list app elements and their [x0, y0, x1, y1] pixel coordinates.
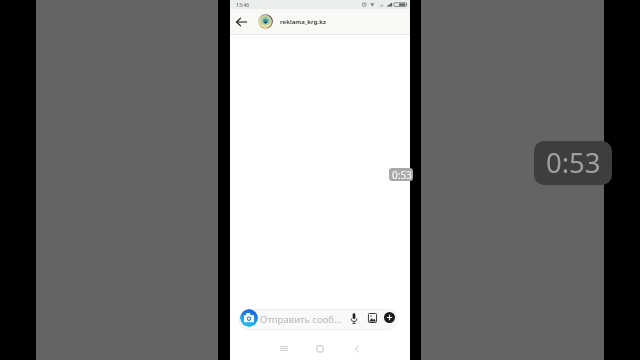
staticText: Отправить сооб...: [260, 313, 342, 326]
button[interactable]: Camera: [240, 309, 258, 327]
button[interactable]: Gallery: [366, 312, 378, 324]
staticText: reklama_krg.kz: [280, 18, 327, 26]
staticText: 0:53: [392, 168, 412, 181]
button[interactable]: reklama_krg.kz: [258, 9, 327, 34]
button[interactable]: More options: [384, 312, 395, 323]
button[interactable]: Back: [347, 342, 366, 356]
button[interactable]: [238, 309, 398, 330]
button[interactable]: Back: [231, 9, 252, 34]
staticText: 0:53: [546, 144, 601, 181]
staticText: 13:46: [236, 1, 250, 8]
button[interactable]: Voice message: [347, 312, 360, 325]
button[interactable]: Recents: [274, 341, 293, 355]
button[interactable]: Home: [310, 342, 329, 356]
